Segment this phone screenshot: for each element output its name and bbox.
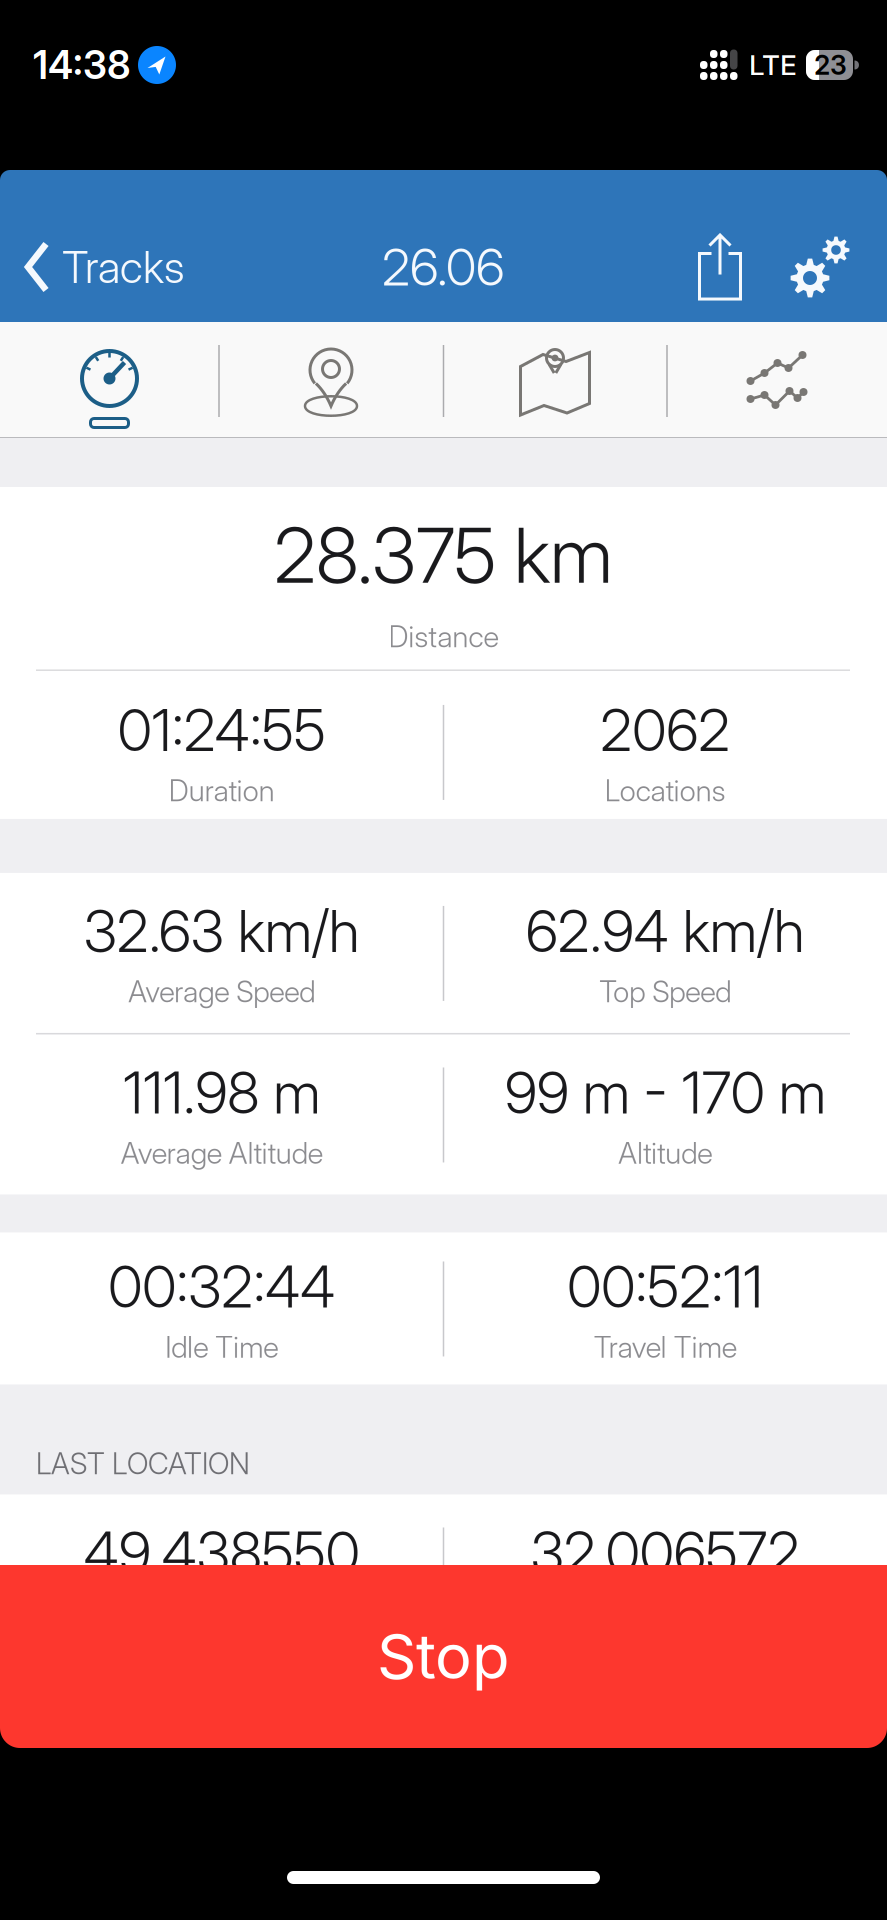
staticText: Average Speed — [128, 974, 315, 1009]
staticText: Locations — [605, 773, 726, 808]
staticText: Tracks — [62, 240, 184, 294]
button[interactable]: Stop — [0, 1565, 887, 1748]
staticText: Duration — [169, 773, 275, 808]
staticText: 23 — [814, 49, 847, 81]
button[interactable]: Tracks — [0, 212, 184, 322]
staticText: 2062 — [600, 695, 730, 765]
staticText: 28.375 km — [274, 509, 613, 601]
staticText: Travel Time — [594, 1329, 737, 1365]
staticText: 01:24:55 — [118, 695, 326, 765]
staticText: Altitude — [618, 1135, 712, 1171]
button[interactable]: Speed — [0, 322, 219, 438]
staticText: 32.006572 — [531, 1518, 800, 1587]
staticText: 99 m - 170 m — [505, 1058, 826, 1127]
button[interactable]: Chart — [667, 322, 887, 438]
staticText: Distance — [388, 619, 498, 654]
button[interactable]: Location — [219, 322, 443, 438]
staticText: 14:38 — [33, 42, 131, 88]
staticText: 00:52:11 — [567, 1252, 763, 1321]
staticText: 00:32:44 — [108, 1252, 335, 1321]
staticText: 111.98 m — [123, 1058, 320, 1127]
staticText: LTE — [749, 48, 797, 82]
staticText: Top Speed — [599, 974, 731, 1009]
button[interactable]: Share — [698, 212, 742, 322]
staticText: Average Altitude — [121, 1135, 323, 1171]
button[interactable]: Map — [443, 322, 667, 438]
staticText: LAST LOCATION — [36, 1446, 250, 1481]
staticText: 32.63 km/h — [84, 896, 360, 966]
button[interactable]: Settings — [791, 212, 867, 322]
staticText: 49.438550 — [84, 1518, 360, 1587]
staticText: Idle Time — [165, 1329, 278, 1365]
staticText: Stop — [377, 1619, 510, 1694]
staticText: 26.06 — [382, 236, 505, 298]
staticText: 62.94 km/h — [526, 896, 805, 966]
